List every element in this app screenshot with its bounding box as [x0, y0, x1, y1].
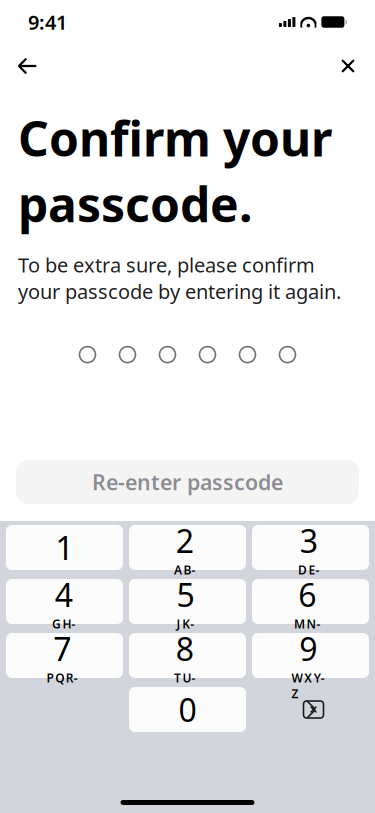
- staticText: TUV: [174, 670, 195, 702]
- staticText: To be extra sure, please confirm your pa…: [18, 251, 341, 305]
- staticText: Confirm your: [18, 106, 332, 170]
- staticText: 9:41: [28, 9, 67, 35]
- staticText: passcode.: [18, 172, 252, 235]
- staticText: JKL: [177, 616, 194, 648]
- staticText: DEF: [298, 562, 319, 594]
- staticText: 3: [300, 519, 318, 562]
- button[interactable]: 4: [6, 579, 123, 624]
- staticText: PQRS: [47, 670, 78, 702]
- button[interactable]: 8: [129, 633, 246, 678]
- button[interactable]: 0: [129, 687, 246, 732]
- button[interactable]: 3: [252, 525, 369, 570]
- staticText: 8: [176, 627, 194, 670]
- staticText: 5: [176, 573, 194, 616]
- staticText: Re-enter passcode: [92, 468, 283, 496]
- staticText: 6: [298, 573, 316, 616]
- staticText: GHI: [52, 616, 75, 648]
- button[interactable]: 7: [6, 633, 123, 678]
- button[interactable]: 9: [252, 633, 369, 678]
- staticText: 7: [53, 627, 71, 670]
- staticText: ABC: [174, 562, 195, 594]
- button[interactable]: Delete: [252, 687, 369, 732]
- staticText: 0: [178, 688, 196, 731]
- button[interactable]: 6: [252, 579, 369, 624]
- staticText: MNO: [294, 616, 320, 648]
- staticText: 9: [299, 627, 317, 670]
- button[interactable]: Re-enter passcode: [16, 460, 359, 504]
- staticText: 2: [176, 519, 194, 562]
- button[interactable]: 2: [129, 525, 246, 570]
- staticText: 4: [55, 573, 73, 616]
- button[interactable]: 1: [6, 525, 123, 570]
- button[interactable]: Back: [5, 44, 49, 88]
- button[interactable]: 5: [129, 579, 246, 624]
- staticText: 1: [55, 526, 73, 569]
- staticText: WXYZ: [292, 670, 325, 702]
- button[interactable]: Close: [326, 44, 370, 88]
